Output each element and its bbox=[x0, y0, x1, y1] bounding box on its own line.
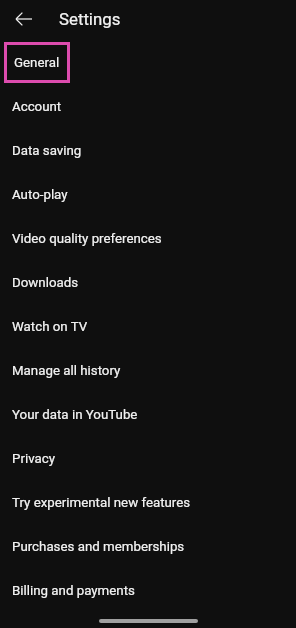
staticText: Account bbox=[12, 99, 62, 115]
staticText: Purchases and memberships bbox=[12, 539, 185, 555]
button[interactable]: Watch on TV bbox=[0, 305, 296, 349]
staticText: Settings bbox=[59, 9, 121, 29]
button[interactable]: Navigate up bbox=[8, 3, 39, 34]
button[interactable]: Your data in YouTube bbox=[0, 393, 296, 437]
staticText: Try experimental new features bbox=[12, 495, 191, 511]
button[interactable]: Data saving bbox=[0, 129, 296, 173]
staticText: Auto-play bbox=[12, 187, 68, 203]
staticText: Downloads bbox=[12, 275, 79, 291]
staticText: General bbox=[14, 55, 60, 71]
staticText: Manage all history bbox=[12, 363, 121, 379]
button[interactable]: Billing and payments bbox=[0, 569, 296, 613]
button[interactable]: Video quality preferences bbox=[0, 217, 296, 261]
button[interactable]: General bbox=[0, 41, 296, 85]
button[interactable]: Purchases and memberships bbox=[0, 525, 296, 569]
staticText: Video quality preferences bbox=[12, 231, 162, 247]
staticText: Watch on TV bbox=[12, 319, 88, 335]
staticText: Privacy bbox=[12, 451, 55, 467]
button[interactable]: Auto-play bbox=[0, 173, 296, 217]
staticText: Billing and payments bbox=[12, 583, 135, 599]
staticText: Your data in YouTube bbox=[12, 407, 138, 423]
button[interactable]: Privacy bbox=[0, 437, 296, 481]
staticText: Data saving bbox=[12, 143, 82, 159]
button[interactable]: Try experimental new features bbox=[0, 481, 296, 525]
button[interactable]: Downloads bbox=[0, 261, 296, 305]
button[interactable]: Manage all history bbox=[0, 349, 296, 393]
button[interactable]: Account bbox=[0, 85, 296, 129]
